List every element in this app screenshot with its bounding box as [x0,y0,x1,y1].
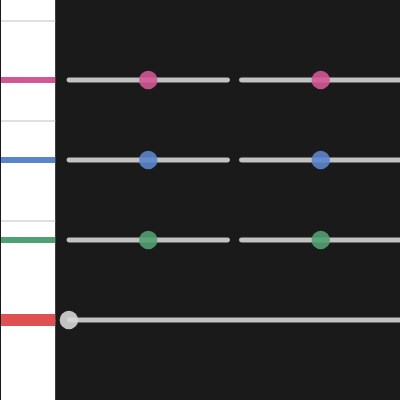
button[interactable]: Master level [0,300,400,340]
button[interactable]: Channel rail [1,0,57,400]
button[interactable]: Treble level [0,60,400,100]
button[interactable]: Mid level [0,140,400,180]
button[interactable]: Bass level [0,220,400,260]
